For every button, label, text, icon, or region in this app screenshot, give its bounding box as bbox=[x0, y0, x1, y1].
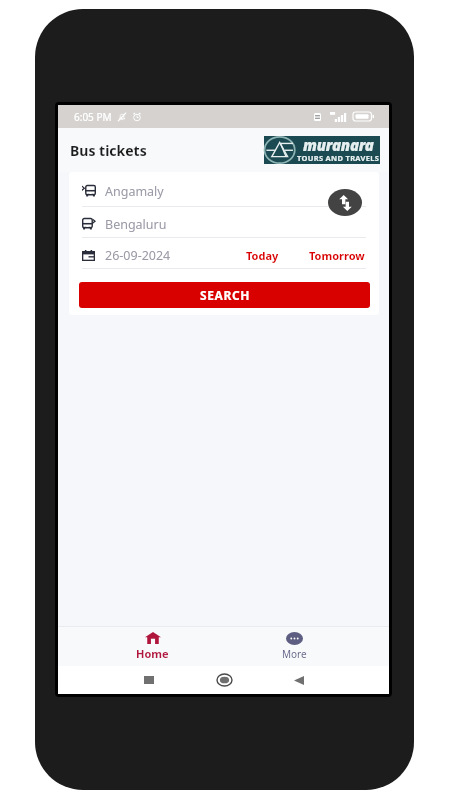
staticText: 26-09-2024 bbox=[105, 247, 171, 264]
button[interactable]: Home bbox=[81, 626, 223, 666]
button[interactable]: Home bbox=[206, 666, 242, 694]
staticText: TOURS AND TRAVELS bbox=[297, 153, 380, 161]
button[interactable]: 26-09-2024 bbox=[82, 247, 171, 264]
button[interactable]: Today bbox=[246, 248, 279, 263]
button[interactable]: SEARCH bbox=[79, 282, 370, 308]
button[interactable]: Tomorrow bbox=[309, 248, 365, 263]
staticText: 6:05 PM bbox=[74, 110, 112, 124]
button[interactable]: More bbox=[223, 626, 366, 666]
button[interactable]: Swap source and destination bbox=[328, 189, 362, 216]
button[interactable]: Recent apps bbox=[131, 666, 167, 694]
staticText: Angamaly bbox=[105, 183, 164, 200]
button[interactable]: Angamaly bbox=[82, 172, 366, 206]
staticText: More bbox=[282, 647, 307, 661]
button[interactable]: Back bbox=[281, 666, 317, 694]
staticText: muranara bbox=[303, 135, 374, 155]
button[interactable]: Bengaluru bbox=[82, 207, 366, 237]
staticText: Bengaluru bbox=[105, 216, 167, 233]
button[interactable]: Company logo bbox=[264, 136, 380, 164]
staticText: Home bbox=[136, 646, 169, 661]
staticText: Bus tickets bbox=[70, 141, 147, 160]
staticText: SEARCH bbox=[200, 287, 250, 303]
